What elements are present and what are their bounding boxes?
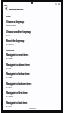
staticText: Alt + Right xyxy=(6,75,13,78)
staticText: Choose another keymap xyxy=(7,29,31,34)
staticText: Default keymap xyxy=(6,23,16,26)
staticText: 10:24 xyxy=(4,4,7,6)
staticText: Keymap xyxy=(6,15,10,17)
staticText: Navigate to above item xyxy=(6,62,30,67)
staticText: Keyboard shortcuts xyxy=(10,7,24,10)
staticText: Navigate to last item xyxy=(7,100,28,105)
button[interactable]: Back xyxy=(4,6,9,11)
button[interactable]: Choose another keymap xyxy=(3,30,61,40)
staticText: Alt + End xyxy=(6,104,11,107)
staticText: Navigate to next item xyxy=(6,52,28,57)
staticText: Alt + Home xyxy=(6,94,13,97)
button[interactable]: Navigate to bottom item xyxy=(3,82,61,92)
staticText: Reset the keymap xyxy=(7,38,25,43)
staticText: Navigate to above item xyxy=(6,62,30,67)
button[interactable]: Navigate to first item xyxy=(3,91,61,101)
staticText: Choose another keymap xyxy=(6,29,31,34)
button[interactable]: Navigate to above item xyxy=(3,63,61,73)
button[interactable]: Reset the keymap xyxy=(3,39,61,49)
staticText: Navigate to next item xyxy=(7,52,29,57)
staticText: Navigate to bottom item xyxy=(6,81,31,86)
staticText: Alt + End xyxy=(6,85,11,88)
staticText: Navigate to bottom item xyxy=(7,81,31,86)
staticText: Alt + End xyxy=(6,104,11,107)
staticText: Alt + K xyxy=(6,33,10,36)
staticText: Alt + Down xyxy=(6,56,13,59)
staticText: Default keymap xyxy=(6,23,16,26)
staticText: Alt + Up xyxy=(6,66,11,69)
staticText: Alt + Up xyxy=(6,66,11,69)
staticText: Alt + K xyxy=(6,33,10,36)
staticText: Navigate to last item xyxy=(6,100,27,105)
staticText: Keyboard shortcuts xyxy=(9,7,23,10)
staticText: Keymap xyxy=(7,15,11,17)
staticText: Navigate to bottom item xyxy=(6,81,31,86)
staticText: Navigate to first item xyxy=(6,90,28,95)
staticText: Navigate to first item xyxy=(7,90,28,95)
staticText: 10:24 xyxy=(4,4,7,6)
staticText: Navigate items xyxy=(6,49,14,51)
staticText: Reset the keymap xyxy=(6,38,24,43)
staticText: Alt + Shift + K xyxy=(6,42,14,45)
staticText: Alt + Shift + K xyxy=(6,42,14,45)
staticText: Keymap xyxy=(6,15,10,17)
button[interactable]: Navigate to below item xyxy=(3,72,61,82)
staticText: Reset the keymap xyxy=(6,38,24,43)
staticText: Navigate to first item xyxy=(6,90,28,95)
staticText: Navigate to above item xyxy=(7,62,30,67)
button[interactable]: Navigate to next item xyxy=(3,53,61,63)
staticText: Alt + End xyxy=(6,85,11,88)
staticText: Choose a keymap xyxy=(6,19,24,24)
staticText: Navigate items xyxy=(7,49,15,51)
staticText: Keyboard shortcuts xyxy=(9,7,23,10)
staticText: Alt + Home xyxy=(6,94,13,97)
staticText: Choose another keymap xyxy=(6,29,31,34)
button[interactable]: Choose a keymap xyxy=(3,20,61,30)
staticText: Alt + Right xyxy=(6,75,13,78)
staticText: 10:24 xyxy=(5,4,8,6)
staticText: Alt + Down xyxy=(6,56,13,59)
staticText: Navigate to below item xyxy=(7,71,30,76)
staticText: Choose a keymap xyxy=(6,19,24,24)
button[interactable]: Navigate to last item xyxy=(3,101,61,111)
staticText: Navigate to below item xyxy=(6,71,30,76)
staticText: Navigate to next item xyxy=(6,52,28,57)
staticText: Choose a keymap xyxy=(7,19,25,24)
staticText: Navigate to last item xyxy=(6,100,27,105)
staticText: Navigate items xyxy=(6,49,14,51)
staticText: Navigate to below item xyxy=(6,71,30,76)
